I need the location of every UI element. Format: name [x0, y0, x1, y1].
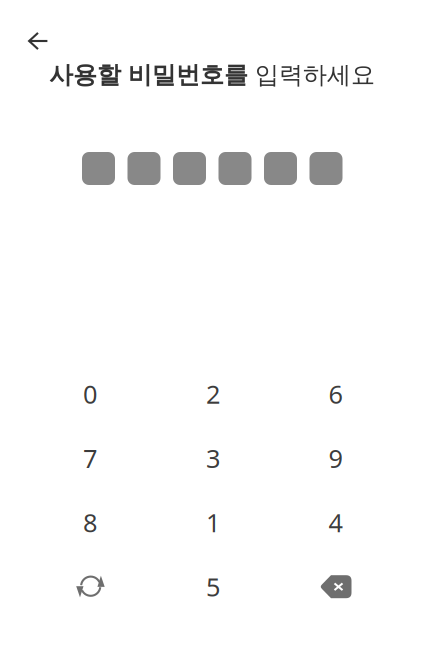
staticText: 3	[206, 441, 220, 475]
button[interactable]: 6	[280, 363, 390, 425]
staticText: 9	[328, 441, 342, 475]
staticText: 5	[206, 570, 220, 603]
staticText: 8	[83, 506, 97, 539]
staticText: 1	[206, 506, 220, 539]
button[interactable]: 4	[280, 491, 390, 553]
button[interactable]: 5	[158, 556, 268, 618]
staticText: 2	[206, 377, 220, 411]
button[interactable]: 3	[158, 427, 268, 489]
button[interactable]: Delete	[280, 556, 390, 618]
staticText: 7	[83, 441, 97, 475]
staticText: 사용할 비밀번호를	[49, 60, 255, 90]
staticText: 입력하세요	[255, 60, 375, 90]
button[interactable]: 2	[158, 363, 268, 425]
button[interactable]: Shuffle keypad	[35, 556, 145, 618]
staticText: 4	[328, 506, 342, 539]
button[interactable]: 1	[158, 491, 268, 553]
staticText: 6	[328, 377, 342, 411]
button[interactable]: 9	[280, 427, 390, 489]
button[interactable]: 0	[35, 363, 145, 425]
button[interactable]: Back	[16, 19, 60, 63]
staticText: 0	[83, 377, 97, 411]
button[interactable]: 7	[35, 427, 145, 489]
button[interactable]: 8	[35, 491, 145, 553]
